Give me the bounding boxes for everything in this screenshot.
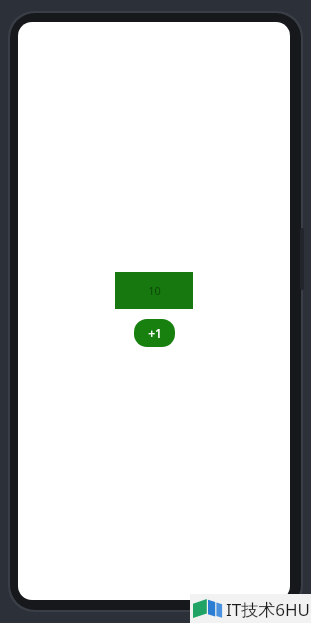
button[interactable]: 10 <box>115 272 193 309</box>
button[interactable]: +1 <box>134 319 175 347</box>
staticText: IT技术6HU <box>226 598 310 621</box>
staticText: 10 <box>148 283 161 298</box>
staticText: +1 <box>148 325 162 341</box>
